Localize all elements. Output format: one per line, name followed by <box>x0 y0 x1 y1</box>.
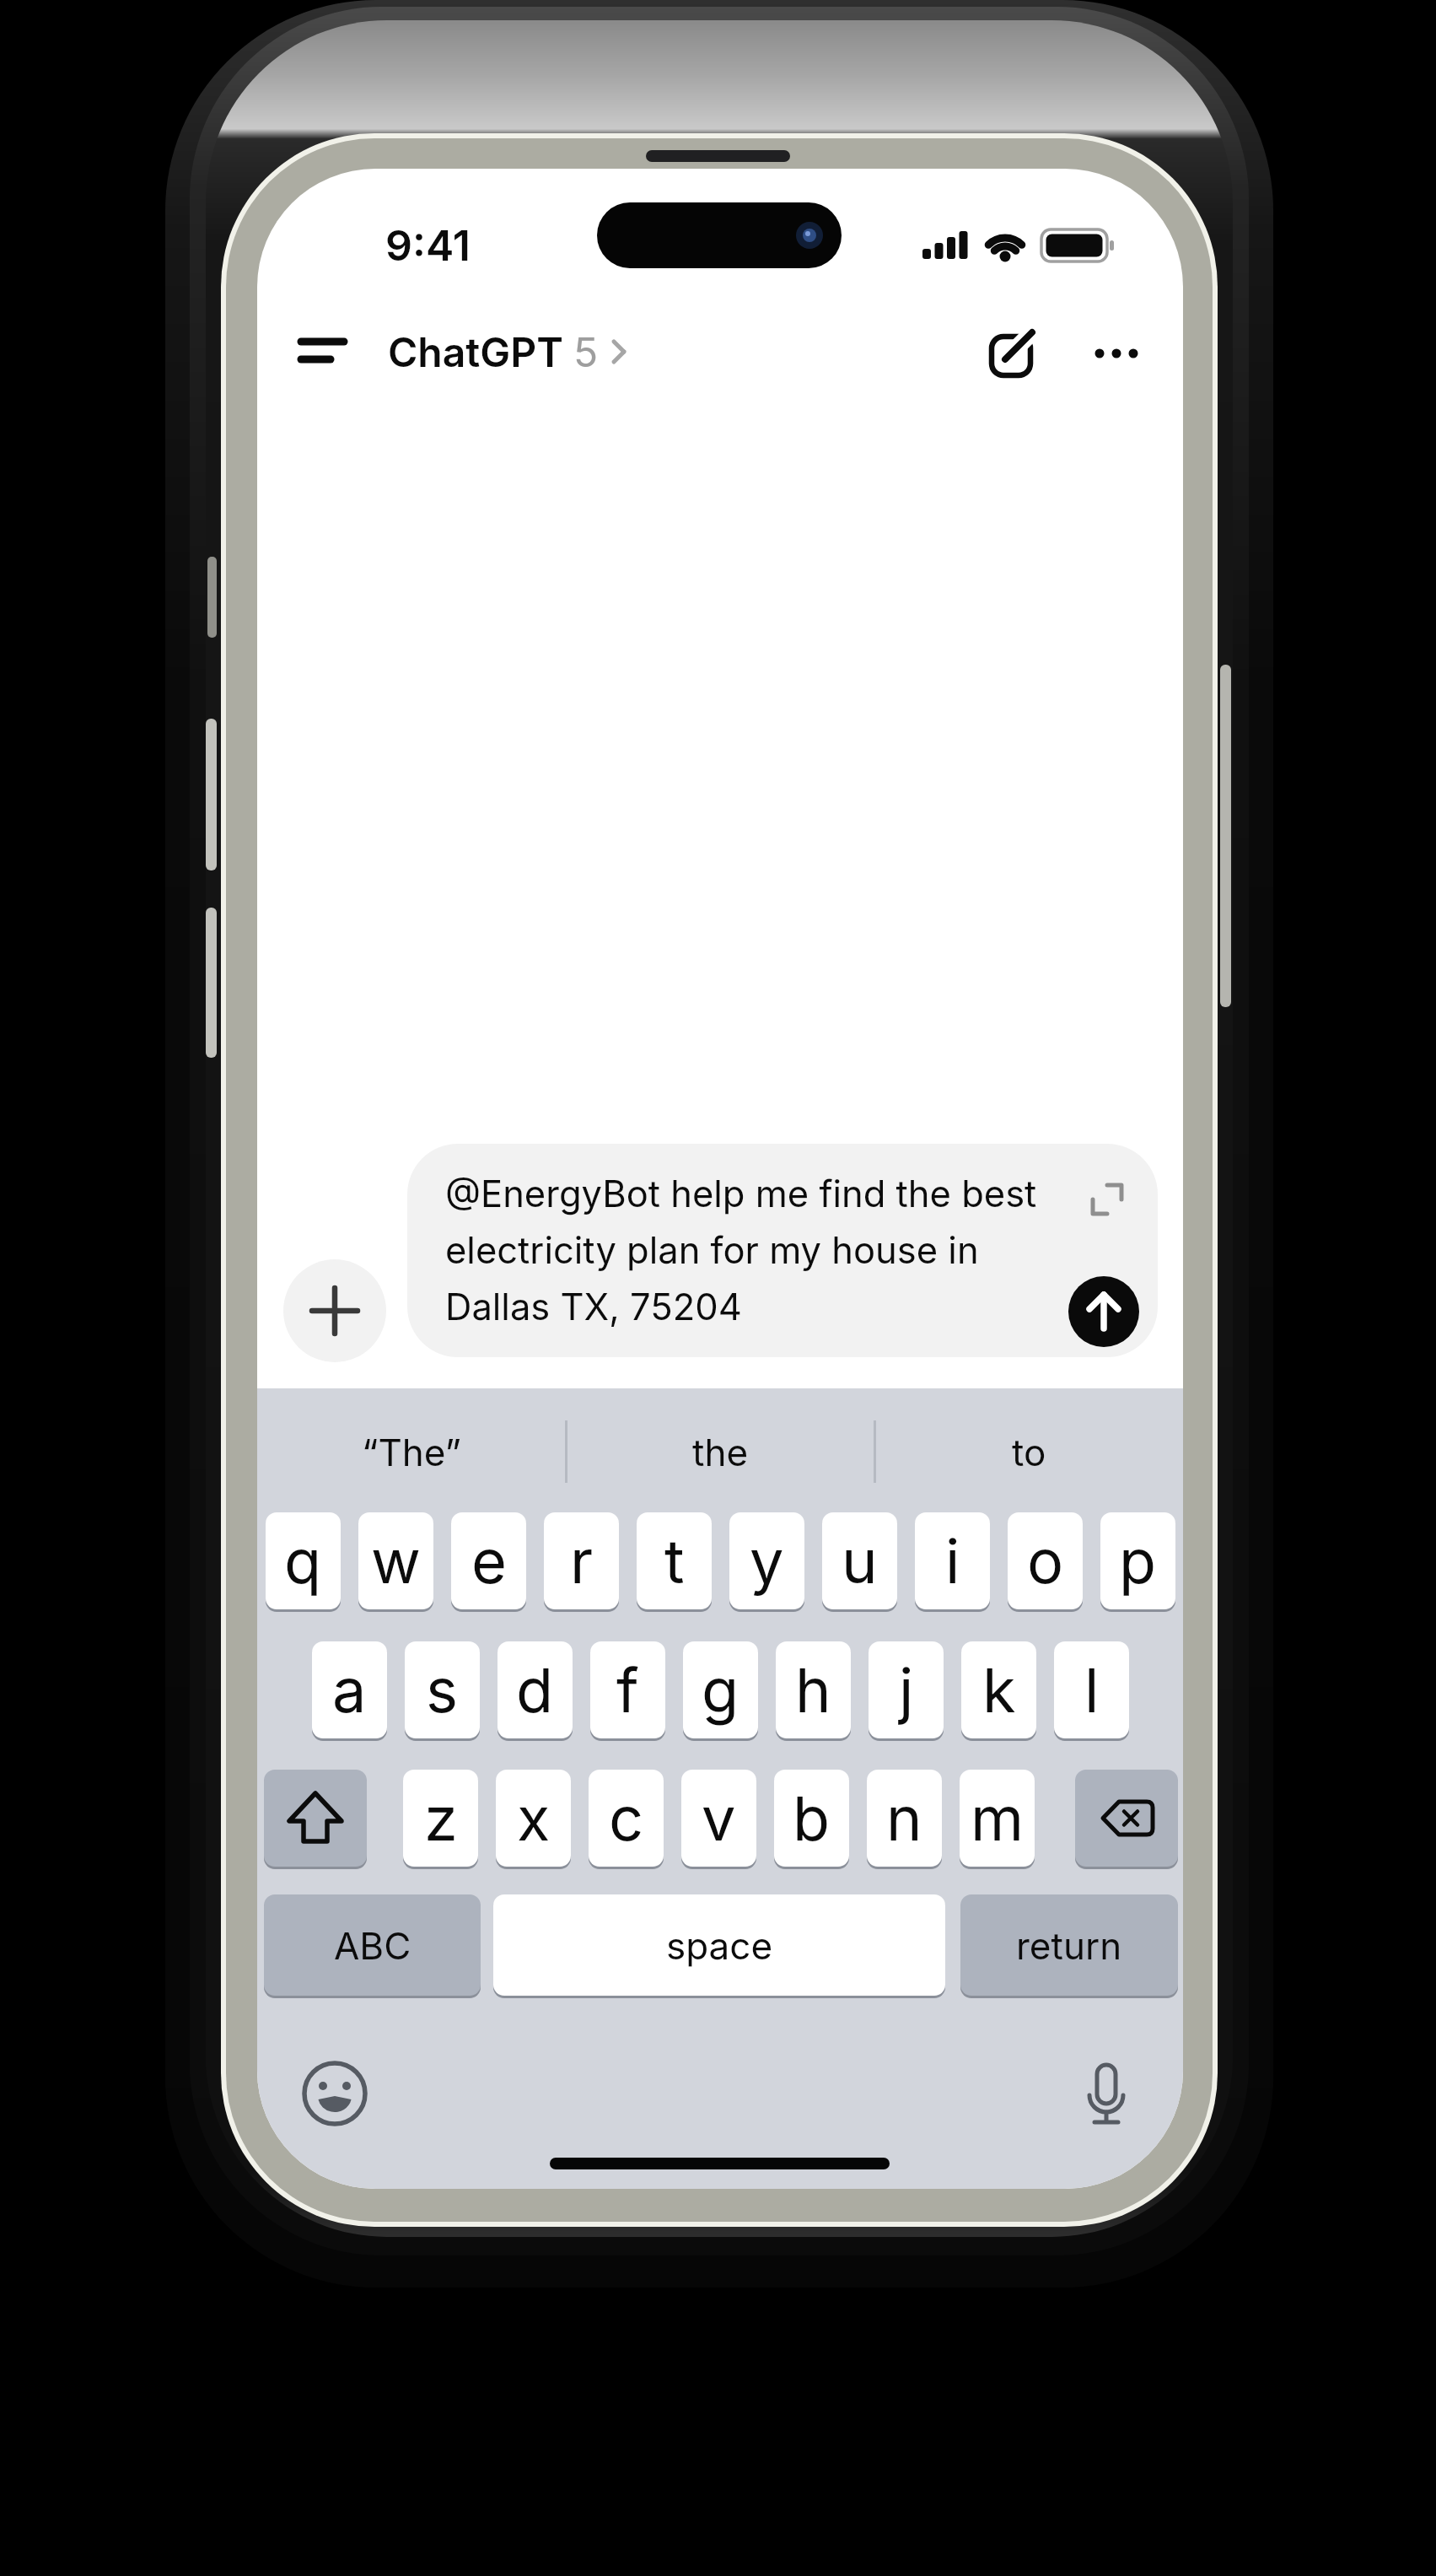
button[interactable] <box>1075 1770 1178 1867</box>
button[interactable]: s <box>405 1641 480 1738</box>
staticText: t <box>664 1524 685 1598</box>
button[interactable]: “The” <box>257 1423 566 1480</box>
button[interactable]: m <box>960 1770 1035 1867</box>
button[interactable]: e <box>451 1512 526 1609</box>
staticText: y <box>750 1524 784 1598</box>
button[interactable]: b <box>774 1770 849 1867</box>
button[interactable] <box>264 1770 367 1867</box>
staticText: q <box>284 1524 322 1598</box>
staticText: n <box>886 1781 922 1855</box>
button[interactable] <box>1068 1276 1139 1347</box>
button[interactable]: i <box>915 1512 990 1609</box>
staticText: f <box>616 1653 639 1727</box>
button[interactable] <box>301 2060 368 2127</box>
staticText: w <box>371 1524 421 1598</box>
button[interactable]: p <box>1100 1512 1175 1609</box>
button[interactable]: n <box>867 1770 942 1867</box>
staticText: b <box>793 1781 831 1855</box>
staticText: i <box>945 1524 960 1598</box>
button[interactable]: q <box>266 1512 341 1609</box>
button[interactable]: ABC <box>264 1894 481 1996</box>
staticText: r <box>570 1524 594 1598</box>
button[interactable]: o <box>1008 1512 1083 1609</box>
staticText: c <box>609 1781 644 1855</box>
staticText: o <box>1027 1524 1064 1598</box>
button[interactable]: v <box>681 1770 756 1867</box>
staticText: a <box>332 1653 367 1727</box>
staticText: p <box>1119 1524 1157 1598</box>
button[interactable]: return <box>960 1894 1178 1996</box>
staticText: x <box>517 1781 551 1855</box>
staticText: ABC <box>334 1923 411 1968</box>
button[interactable]: k <box>961 1641 1036 1738</box>
button[interactable]: r <box>544 1512 619 1609</box>
button[interactable]: f <box>590 1641 665 1738</box>
button[interactable]: ChatGPT <box>388 326 629 378</box>
staticText: s <box>426 1653 459 1727</box>
button[interactable]: the <box>566 1423 874 1480</box>
staticText: k <box>982 1653 1016 1727</box>
staticText: 9:41 <box>385 220 471 271</box>
button[interactable] <box>989 326 1041 379</box>
staticText: return <box>1016 1923 1122 1968</box>
button[interactable]: u <box>822 1512 897 1609</box>
button[interactable] <box>1088 335 1151 373</box>
button[interactable]: x <box>496 1770 571 1867</box>
button[interactable]: y <box>729 1512 804 1609</box>
button[interactable]: j <box>869 1641 944 1738</box>
staticText: d <box>516 1653 554 1727</box>
button[interactable]: w <box>358 1512 433 1609</box>
staticText: “The” <box>362 1430 461 1474</box>
staticText: ChatGPT <box>388 327 563 376</box>
staticText: g <box>702 1653 740 1727</box>
button[interactable]: @EnergyBot help me find the best electri… <box>407 1144 1158 1357</box>
button[interactable]: d <box>497 1641 573 1738</box>
button[interactable] <box>283 1259 386 1362</box>
staticText: u <box>842 1524 878 1598</box>
staticText: @EnergyBot help me find the best electri… <box>445 1172 1037 1328</box>
staticText: m <box>971 1781 1025 1855</box>
button[interactable]: h <box>776 1641 851 1738</box>
button[interactable]: c <box>589 1770 664 1867</box>
staticText: to <box>1012 1430 1046 1474</box>
staticText: j <box>899 1653 914 1727</box>
button[interactable]: t <box>637 1512 712 1609</box>
staticText: h <box>795 1653 831 1727</box>
button[interactable]: g <box>683 1641 758 1738</box>
staticText: z <box>424 1781 458 1855</box>
staticText: v <box>702 1781 736 1855</box>
staticText: the <box>692 1430 749 1474</box>
staticText: 5 <box>573 327 599 376</box>
staticText: space <box>666 1923 773 1968</box>
button[interactable]: space <box>493 1894 945 1996</box>
button[interactable]: a <box>312 1641 387 1738</box>
staticText: l <box>1084 1653 1100 1727</box>
button[interactable] <box>1076 2063 1137 2127</box>
staticText: e <box>471 1524 507 1598</box>
button[interactable] <box>291 327 354 378</box>
button[interactable]: l <box>1054 1641 1129 1738</box>
button[interactable]: z <box>403 1770 478 1867</box>
button[interactable]: to <box>874 1423 1183 1480</box>
